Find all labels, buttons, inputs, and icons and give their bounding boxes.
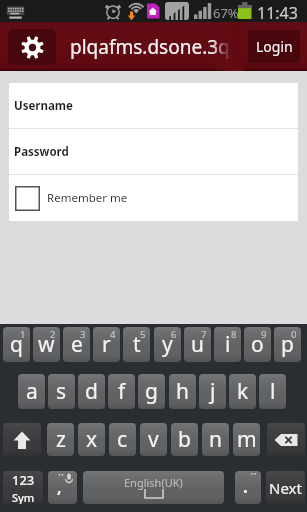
staticText: p [281,330,294,359]
button[interactable]: i [214,327,241,362]
staticText: Sym [12,490,35,504]
button[interactable]: p [274,327,301,362]
button[interactable]: b [171,423,198,456]
staticText: Password [14,144,69,160]
button[interactable]: Next [266,471,305,504]
button[interactable]: Period [235,471,261,504]
staticText: 7 [201,328,207,341]
staticText: q [10,330,23,359]
button[interactable]: q [3,327,30,362]
button[interactable]: o [244,327,271,362]
button[interactable]: Remember me [9,175,298,221]
staticText: v [148,425,159,454]
button[interactable]: k [229,374,256,409]
button[interactable]: Shift [3,423,41,456]
staticText: 123 [12,471,35,489]
staticText: e [71,330,83,359]
staticText: b [178,425,191,454]
staticText: Next [269,478,302,498]
staticText: o [251,330,264,359]
staticText: r [102,330,111,359]
staticText: 4 [110,328,116,341]
staticText: x [86,425,98,454]
staticText: Login [256,37,293,56]
button[interactable]: s [48,374,75,409]
staticText: i [225,330,231,359]
staticText: 1 [20,328,26,341]
button[interactable]: j [199,374,226,409]
button[interactable]: z [47,423,74,456]
staticText: y [162,330,173,359]
button[interactable]: c [109,423,136,456]
button[interactable]: Space [83,471,224,504]
button[interactable]: Symbols [3,471,43,504]
staticText: k [237,377,249,406]
button[interactable]: Username [9,83,298,128]
staticText: f [118,377,126,406]
staticText: 11:43 [257,2,298,24]
button[interactable]: w [33,327,60,362]
button[interactable]: Comma and voice input [48,471,77,504]
staticText: 2 [50,328,56,341]
staticText: n [209,425,222,454]
button[interactable]: l [259,374,286,409]
button[interactable]: Login [248,30,300,63]
staticText: s [56,377,67,406]
button[interactable]: u [184,327,211,362]
staticText: 8 [231,328,237,341]
button[interactable]: v [140,423,167,456]
staticText: . [243,475,248,498]
button[interactable]: Settings [8,29,56,65]
staticText: m [237,425,257,454]
staticText: z [56,425,66,454]
staticText: h [176,377,189,406]
button[interactable]: d [78,374,105,409]
button[interactable]: m [233,423,260,456]
button[interactable]: y [154,327,181,362]
staticText: 67% [213,4,239,22]
staticText: w [38,330,55,359]
staticText: Username [14,98,73,114]
staticText: g [145,377,158,406]
staticText: plqafms.dsone.3q [70,34,230,60]
button[interactable]: n [202,423,229,456]
staticText: , [57,476,62,498]
button[interactable]: t [123,327,150,362]
button[interactable]: Backspace [267,423,305,456]
staticText: 9 [261,328,267,341]
staticText: u [191,330,204,359]
staticText: t [133,330,141,359]
staticText: c [117,425,128,454]
button[interactable]: g [138,374,165,409]
button[interactable]: a [18,374,45,409]
staticText: a [26,377,38,406]
staticText: 6 [171,328,177,341]
button[interactable]: f [108,374,135,409]
staticText: 0 [291,328,297,341]
button[interactable]: e [63,327,90,362]
staticText: j [210,377,216,406]
staticText: 3 [80,328,86,341]
staticText: 5 [140,328,146,341]
staticText: l [270,377,276,406]
button[interactable]: r [93,327,120,362]
staticText: Remember me [47,190,128,206]
button[interactable]: x [78,423,105,456]
button[interactable]: h [169,374,196,409]
staticText: d [85,377,98,406]
staticText: English(UK) [124,475,183,490]
button[interactable]: Password [9,129,298,174]
